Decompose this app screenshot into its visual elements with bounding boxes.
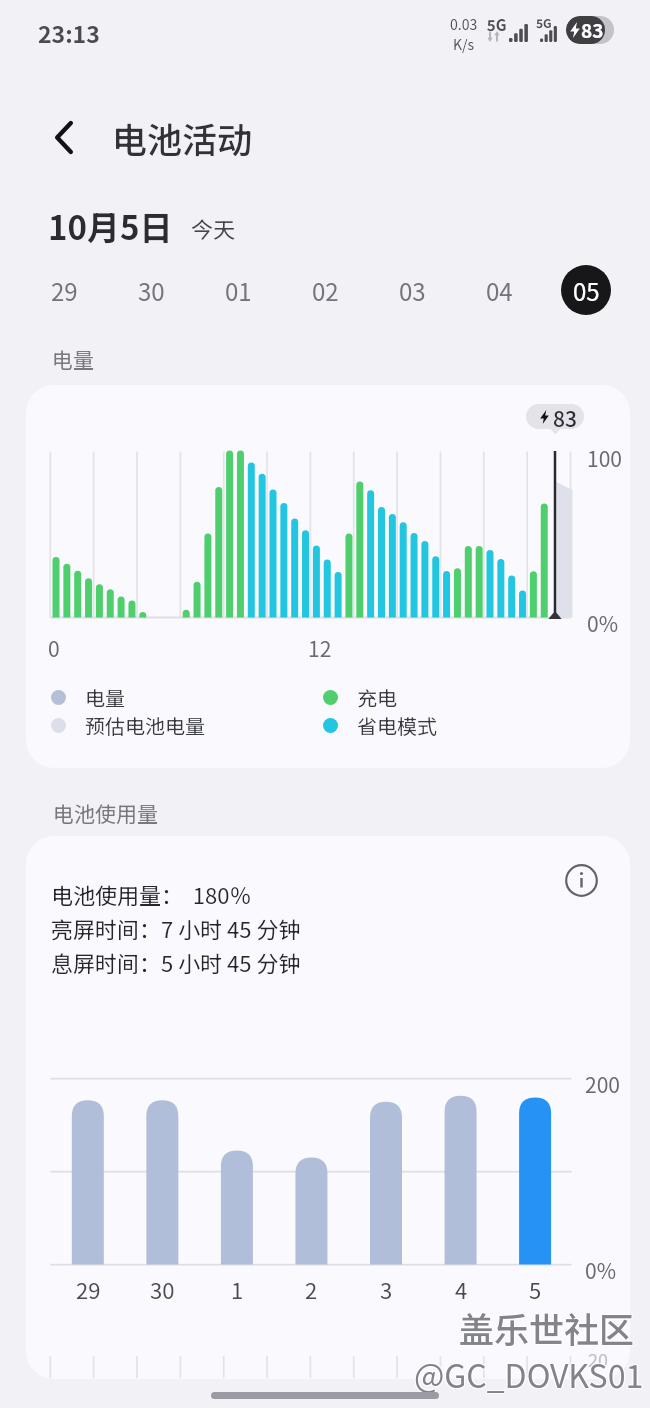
staticText: @GC_DOVKS01 <box>414 1350 644 1396</box>
button[interactable]: 30 <box>126 265 176 315</box>
staticText: 83 <box>553 403 577 433</box>
staticText: 0 <box>48 633 60 663</box>
staticText: 29 <box>76 1273 101 1305</box>
staticText: 0% <box>585 1255 616 1285</box>
staticText: @GC_DOVKS01 <box>413 1350 643 1396</box>
staticText: 电池使用量 <box>53 798 158 828</box>
staticText: 盖乐世社区 <box>458 1301 634 1352</box>
staticText: 盖乐世社区 <box>460 1302 636 1353</box>
button[interactable]: 04 <box>474 265 524 315</box>
staticText: 4 <box>455 1273 468 1305</box>
button[interactable]: 省电模式 <box>323 711 437 740</box>
staticText: 预估电池电量 <box>85 711 205 740</box>
staticText: @GC_DOVKS01 <box>414 1352 644 1398</box>
staticText: 息屏时间：5 小时 45 分钟 <box>51 946 301 978</box>
staticText: 200 <box>585 1069 620 1099</box>
staticText: 20 <box>588 1346 608 1372</box>
staticText: 0% <box>587 608 618 638</box>
staticText: 30 <box>150 1273 175 1305</box>
staticText: 充电 <box>357 683 397 712</box>
staticText: @GC_DOVKS01 <box>415 1350 645 1396</box>
staticText: 盖乐世社区 <box>459 1301 635 1352</box>
staticText: 电池使用量： 180％ <box>51 878 252 910</box>
button[interactable]: 29 <box>39 265 89 315</box>
staticText: 盖乐世社区 <box>458 1302 634 1353</box>
staticText: @GC_DOVKS01 <box>413 1352 643 1398</box>
staticText: 04 <box>486 273 513 308</box>
staticText: 5G <box>487 14 507 36</box>
button[interactable]: 充电 <box>323 683 397 712</box>
staticText: @GC_DOVKS01 <box>415 1351 645 1397</box>
staticText: 盖乐世社区 <box>460 1303 636 1354</box>
button[interactable]: 01 <box>213 265 263 315</box>
staticText: 盖乐世社区 <box>459 1303 635 1354</box>
button[interactable]: Back <box>41 114 87 160</box>
staticText: 今天 <box>191 212 236 244</box>
staticText: 03 <box>399 273 426 308</box>
staticText: 30 <box>138 273 165 308</box>
staticText: 2 <box>305 1273 318 1305</box>
staticText: 盖乐世社区 <box>458 1303 634 1354</box>
staticText: 电池活动 <box>112 112 253 163</box>
staticText: 0.03 <box>450 14 478 34</box>
button[interactable]: 05 <box>561 265 611 315</box>
staticText: 盖乐世社区 <box>460 1301 636 1352</box>
button[interactable]: 02 <box>300 265 350 315</box>
button[interactable]: 电量 <box>51 683 125 712</box>
staticText: @GC_DOVKS01 <box>413 1351 643 1397</box>
staticText: K/s <box>453 34 475 54</box>
button[interactable]: 预估电池电量 <box>51 711 205 740</box>
staticText: 盖乐世社区 <box>459 1302 635 1353</box>
staticText: 100 <box>587 443 622 473</box>
staticText: 29 <box>51 273 78 308</box>
staticText: 5G <box>536 14 552 31</box>
staticText: @GC_DOVKS01 <box>414 1351 644 1397</box>
staticText: 01 <box>225 273 252 308</box>
staticText: 省电模式 <box>357 711 437 740</box>
staticText: 3 <box>380 1273 393 1305</box>
staticText: 亮屏时间：7 小时 45 分钟 <box>51 912 301 944</box>
staticText: 5 <box>529 1273 542 1305</box>
staticText: 23:13 <box>38 16 100 49</box>
staticText: 1 <box>231 1273 244 1305</box>
staticText: 电量 <box>52 344 94 374</box>
staticText: 83 <box>581 16 604 44</box>
staticText: 12 <box>308 633 332 663</box>
staticText: 05 <box>573 273 600 308</box>
button[interactable]: Info <box>558 857 604 903</box>
staticText: 电量 <box>85 683 125 712</box>
staticText: 02 <box>312 273 339 308</box>
staticText: 10月5日 <box>48 202 173 250</box>
button[interactable]: 03 <box>387 265 437 315</box>
staticText: @GC_DOVKS01 <box>415 1352 645 1398</box>
